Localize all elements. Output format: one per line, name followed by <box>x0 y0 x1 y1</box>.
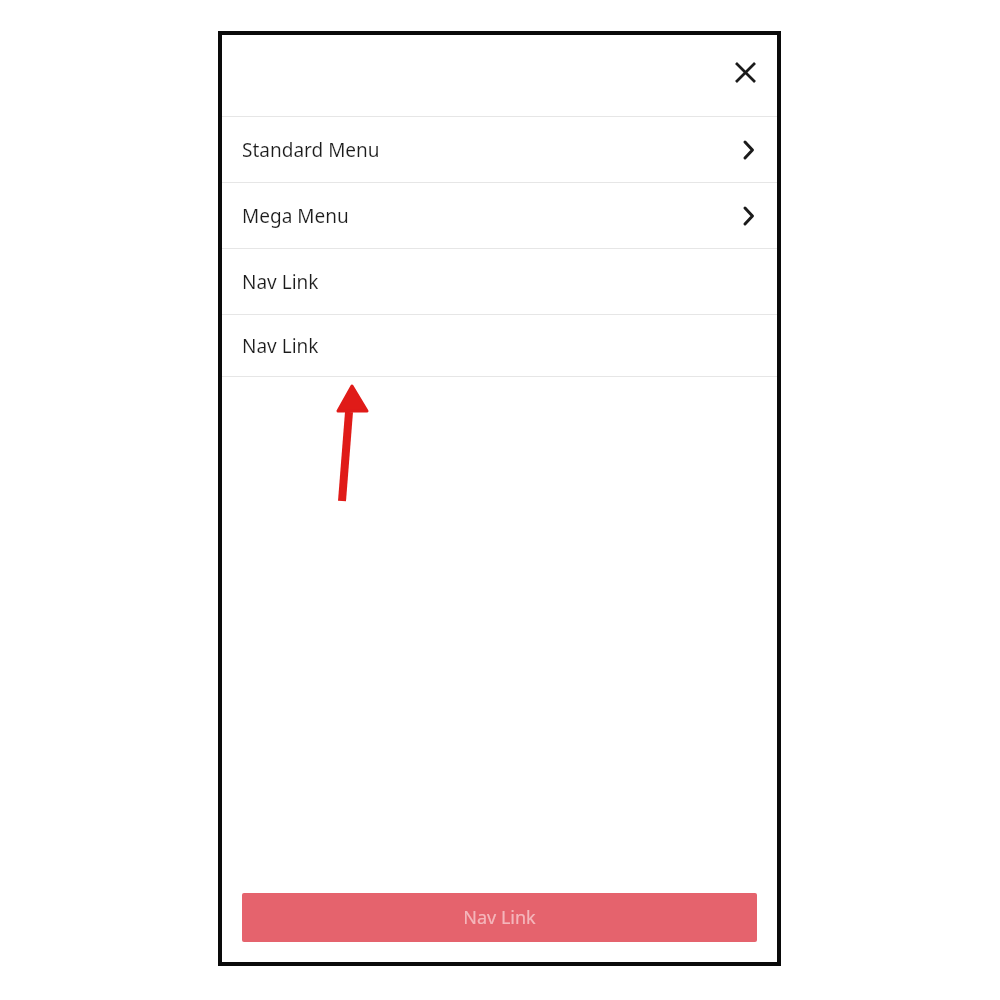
button[interactable]: Nav Link <box>242 893 757 942</box>
button[interactable]: Close <box>721 48 769 96</box>
staticText: Nav Link <box>463 905 536 930</box>
staticText: Nav Link <box>242 333 319 359</box>
staticText: Mega Menu <box>242 203 349 229</box>
button[interactable]: Standard Menu <box>222 117 777 182</box>
staticText: Standard Menu <box>242 137 380 163</box>
button[interactable]: Nav Link <box>222 249 777 314</box>
button[interactable]: Nav Link <box>222 315 777 376</box>
staticText: Nav Link <box>242 269 319 295</box>
button[interactable]: Mega Menu <box>222 183 777 248</box>
